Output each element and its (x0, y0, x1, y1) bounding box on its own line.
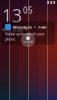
staticText: 05 (23, 5, 33, 16)
staticText: Swipe up to unlock your phone (5, 31, 45, 42)
staticText: 13 (2, 4, 22, 27)
staticText: Messages • now (13, 24, 46, 30)
staticText: Wed, 12 July (2, 27, 23, 32)
staticText: ▮ ▮ ▮ (47, 0, 55, 4)
staticText: unlock (23, 40, 32, 44)
